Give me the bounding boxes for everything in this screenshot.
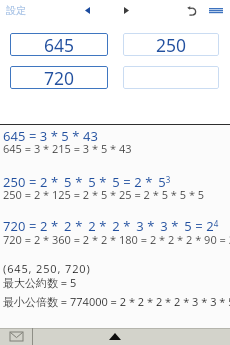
staticText: 設定: [6, 4, 26, 17]
staticText: 250 = 2 * 125 = 2 * 5 * 25 = 2 * 5 * 5 *…: [3, 187, 205, 202]
staticText: 645 = 3 * 215 = 3 * 5 * 43: [3, 141, 132, 156]
staticText: (645, 250, 720): [3, 261, 91, 276]
staticText: 720: [44, 66, 75, 89]
button[interactable]: 645: [10, 33, 108, 56]
staticText: 最小公倍数 = 774000 = 2 * 2 * 2 * 2 * 3 * 3 *…: [3, 294, 230, 309]
button[interactable]: 720: [10, 66, 108, 89]
staticText: 645 = 3 * 5 * 43: [3, 127, 98, 145]
button[interactable]: Previous: [79, 2, 96, 19]
button[interactable]: Next: [118, 2, 135, 19]
staticText: 250 = 2 * 5 * 5 * 5 = 2 * 53: [3, 173, 171, 191]
staticText: 最大公約数 = 5: [3, 275, 77, 290]
staticText: 720 = 2 * 2 * 2 * 2 * 3 * 3 * 5 = 24: [3, 217, 219, 235]
staticText: 250: [156, 33, 187, 56]
staticText: 720 = 2 * 360 = 2 * 2 * 180 = 2 * 2 * 2 …: [3, 232, 230, 247]
staticText: 645: [44, 33, 75, 56]
button[interactable]: 250: [123, 33, 219, 56]
button[interactable]: Menu: [206, 2, 226, 20]
button[interactable]: Expand: [33, 328, 197, 345]
button[interactable]: [123, 66, 219, 89]
button[interactable]: Undo: [186, 5, 198, 17]
button[interactable]: 設定: [6, 4, 26, 17]
button[interactable]: Mail: [0, 328, 32, 345]
